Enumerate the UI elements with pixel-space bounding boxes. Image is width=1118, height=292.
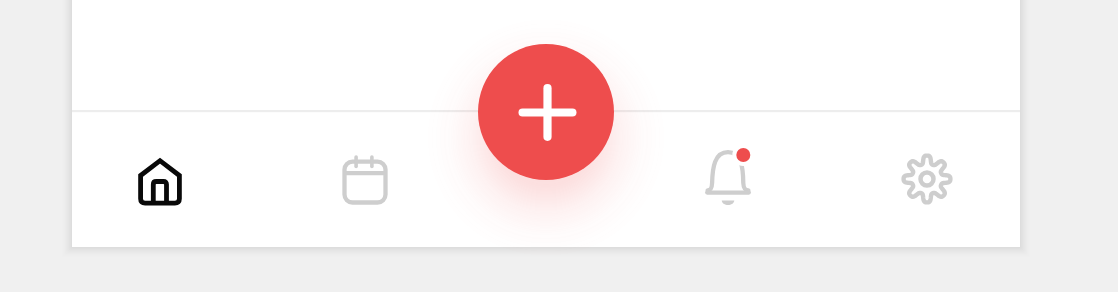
button[interactable]: Add <box>478 44 614 180</box>
button[interactable]: Home <box>124 144 196 216</box>
button[interactable]: Calendar <box>329 146 401 218</box>
button[interactable]: Notifications <box>692 143 764 215</box>
button[interactable]: Settings <box>891 143 963 215</box>
